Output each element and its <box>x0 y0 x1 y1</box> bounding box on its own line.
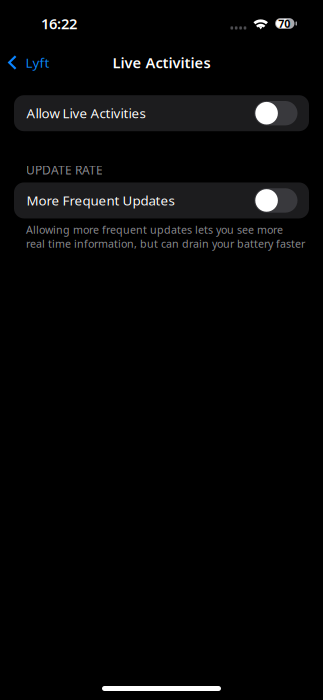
staticText: More Frequent Updates <box>26 192 174 209</box>
staticText: Live Activities <box>112 53 210 72</box>
button[interactable]: More Frequent Updates <box>14 182 309 218</box>
staticText: Allowing more frequent updates lets you … <box>26 222 305 251</box>
staticText: Lyft <box>25 54 49 71</box>
button[interactable]: Allow Live Activities <box>14 95 309 131</box>
staticText: Allow Live Activities <box>26 104 145 122</box>
staticText: UPDATE RATE <box>26 162 103 178</box>
staticText: 70 <box>278 16 290 31</box>
button[interactable]: Back to Lyft <box>0 49 58 76</box>
staticText: 16:22 <box>41 14 77 33</box>
